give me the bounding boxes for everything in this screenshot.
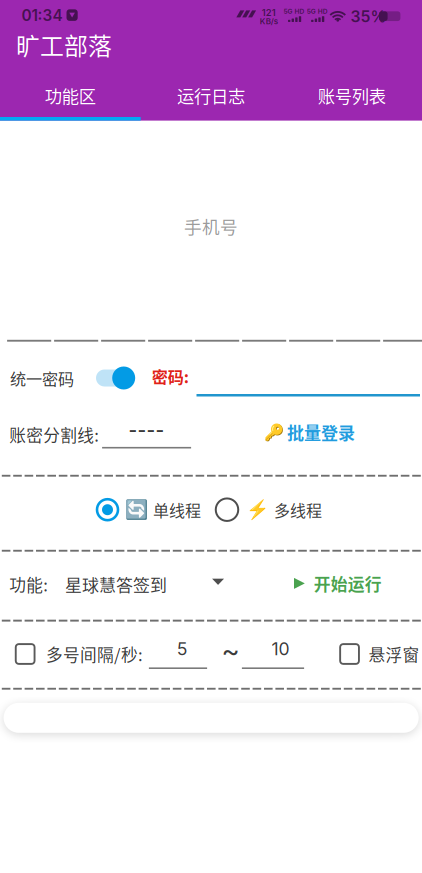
staticText: 01:34: [21, 6, 62, 25]
staticText: 多线程: [274, 498, 322, 521]
button[interactable]: 运行日志: [141, 83, 281, 107]
staticText: 星球慧答签到: [65, 572, 167, 596]
staticText: 单线程: [153, 498, 201, 521]
button[interactable]: 功能区: [0, 83, 141, 107]
staticText: ----: [129, 419, 165, 441]
staticText: 🔑: [264, 422, 284, 442]
button[interactable]: 统一密码开关: [96, 366, 136, 389]
button[interactable]: 账号列表: [281, 83, 422, 107]
staticText: 5G HD: [284, 7, 305, 15]
staticText: ⚡: [245, 499, 268, 521]
staticText: 悬浮窗: [368, 642, 419, 666]
staticText: 10: [272, 638, 290, 659]
staticText: 开始运行: [314, 571, 382, 595]
button[interactable]: 多号间隔/秒:: [15, 643, 143, 665]
staticText: 密码:: [152, 364, 189, 388]
button[interactable]: 星球慧答签到: [65, 574, 224, 594]
staticText: 功能:: [9, 572, 48, 596]
button[interactable]: 开始运行: [294, 573, 382, 593]
staticText: 5G HD: [307, 7, 328, 15]
staticText: 多号间隔/秒:: [46, 642, 143, 666]
staticText: 运行日志: [177, 83, 245, 108]
staticText: 手机号: [184, 213, 238, 239]
staticText: 旷工部落: [16, 27, 112, 62]
staticText: 121: [262, 7, 276, 18]
button[interactable]: 悬浮窗: [339, 643, 419, 665]
staticText: KB/s: [260, 16, 278, 26]
staticText: ~: [221, 633, 239, 667]
staticText: 5: [177, 638, 188, 659]
staticText: 35%: [350, 7, 386, 26]
staticText: 账密分割线:: [9, 422, 99, 446]
staticText: 统一密码: [10, 366, 74, 390]
button[interactable]: 🔑: [264, 420, 355, 444]
staticText: 🔄: [124, 499, 147, 521]
staticText: 批量登录: [287, 420, 355, 444]
button[interactable]: ⚡: [214, 498, 322, 522]
staticText: 账号列表: [318, 83, 386, 108]
staticText: 功能区: [45, 83, 96, 108]
button[interactable]: 🔄: [95, 498, 201, 522]
